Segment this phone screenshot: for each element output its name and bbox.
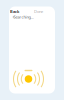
staticText: Done bbox=[34, 9, 43, 14]
button[interactable]: Done bbox=[34, 9, 43, 14]
staticText: Back bbox=[10, 9, 19, 14]
button[interactable]: Back bbox=[10, 9, 19, 14]
staticText: Searching… bbox=[13, 14, 33, 20]
